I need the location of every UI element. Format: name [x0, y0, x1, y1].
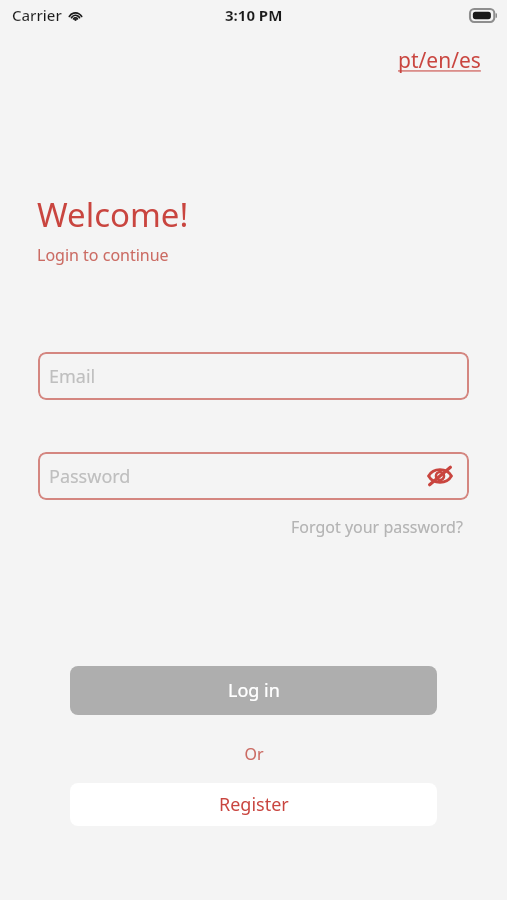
staticText: Carrier — [12, 5, 62, 25]
staticText: Login to continue — [37, 244, 169, 266]
staticText: pt/en/es — [398, 46, 481, 75]
button[interactable]: Forgot your password? — [287, 512, 467, 542]
staticText: Or — [244, 743, 264, 765]
button[interactable]: Email — [38, 352, 469, 400]
button[interactable]: Show password — [423, 459, 457, 493]
staticText: 3:10 PM — [225, 5, 283, 25]
button[interactable]: Register — [70, 783, 437, 826]
staticText: Log in — [228, 678, 280, 703]
staticText: Password — [49, 464, 131, 489]
staticText: Register — [219, 792, 289, 817]
staticText: Email — [49, 364, 96, 389]
staticText: Forgot your password? — [291, 516, 463, 538]
staticText: Welcome! — [37, 192, 189, 237]
button[interactable]: pt/en/es — [396, 44, 483, 77]
button[interactable]: Log in — [70, 666, 437, 715]
button[interactable]: Password — [38, 452, 469, 500]
